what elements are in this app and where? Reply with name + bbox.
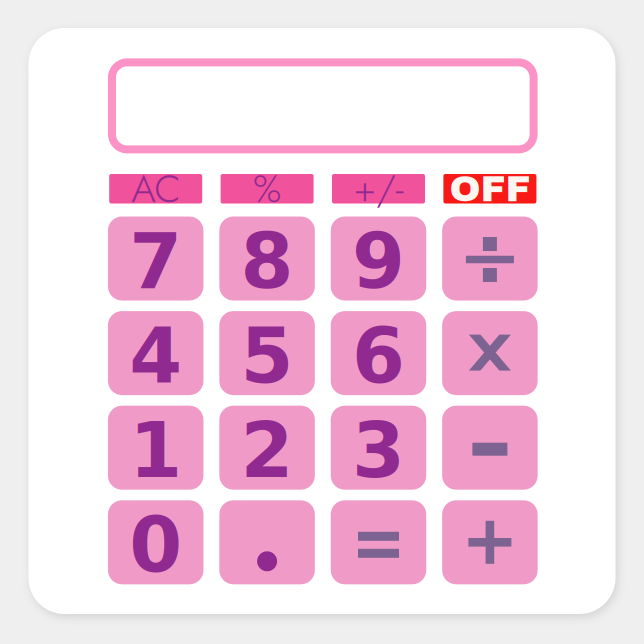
staticText: 7 [129,217,182,306]
button[interactable]: 6 [331,311,426,395]
button[interactable]: 3 [331,406,426,490]
button[interactable]: 1 [108,406,203,490]
button[interactable]: Divide [442,216,538,300]
button[interactable]: Decimal point [219,500,315,584]
button[interactable]: Equals [331,500,426,584]
staticText: +/- [353,161,403,217]
staticText: 1 [129,406,182,495]
button[interactable]: 2 [219,406,315,490]
button[interactable]: Add [442,500,538,584]
button[interactable]: Subtract [442,406,538,490]
button[interactable]: 9 [331,216,426,300]
button[interactable]: 5 [219,311,315,395]
staticText: 4 [129,312,182,400]
staticText: % [253,161,281,217]
staticText: 0 [129,501,182,590]
button[interactable]: AC [109,174,202,203]
staticText: 5 [241,312,294,400]
staticText: OFF [449,168,530,209]
button[interactable]: 7 [108,216,203,300]
button[interactable]: Multiply [442,311,538,395]
staticText: 8 [241,217,294,306]
staticText: 9 [352,217,405,306]
staticText: 6 [352,312,405,400]
button[interactable]: % [221,174,314,203]
staticText: 2 [241,406,294,495]
staticText: 3 [352,406,405,495]
button[interactable]: 4 [108,311,203,395]
button[interactable]: OFF [443,174,536,203]
button[interactable]: 0 [108,500,203,584]
button[interactable]: +/- [332,174,425,203]
button[interactable]: 8 [219,216,315,300]
staticText: AC [131,161,180,217]
